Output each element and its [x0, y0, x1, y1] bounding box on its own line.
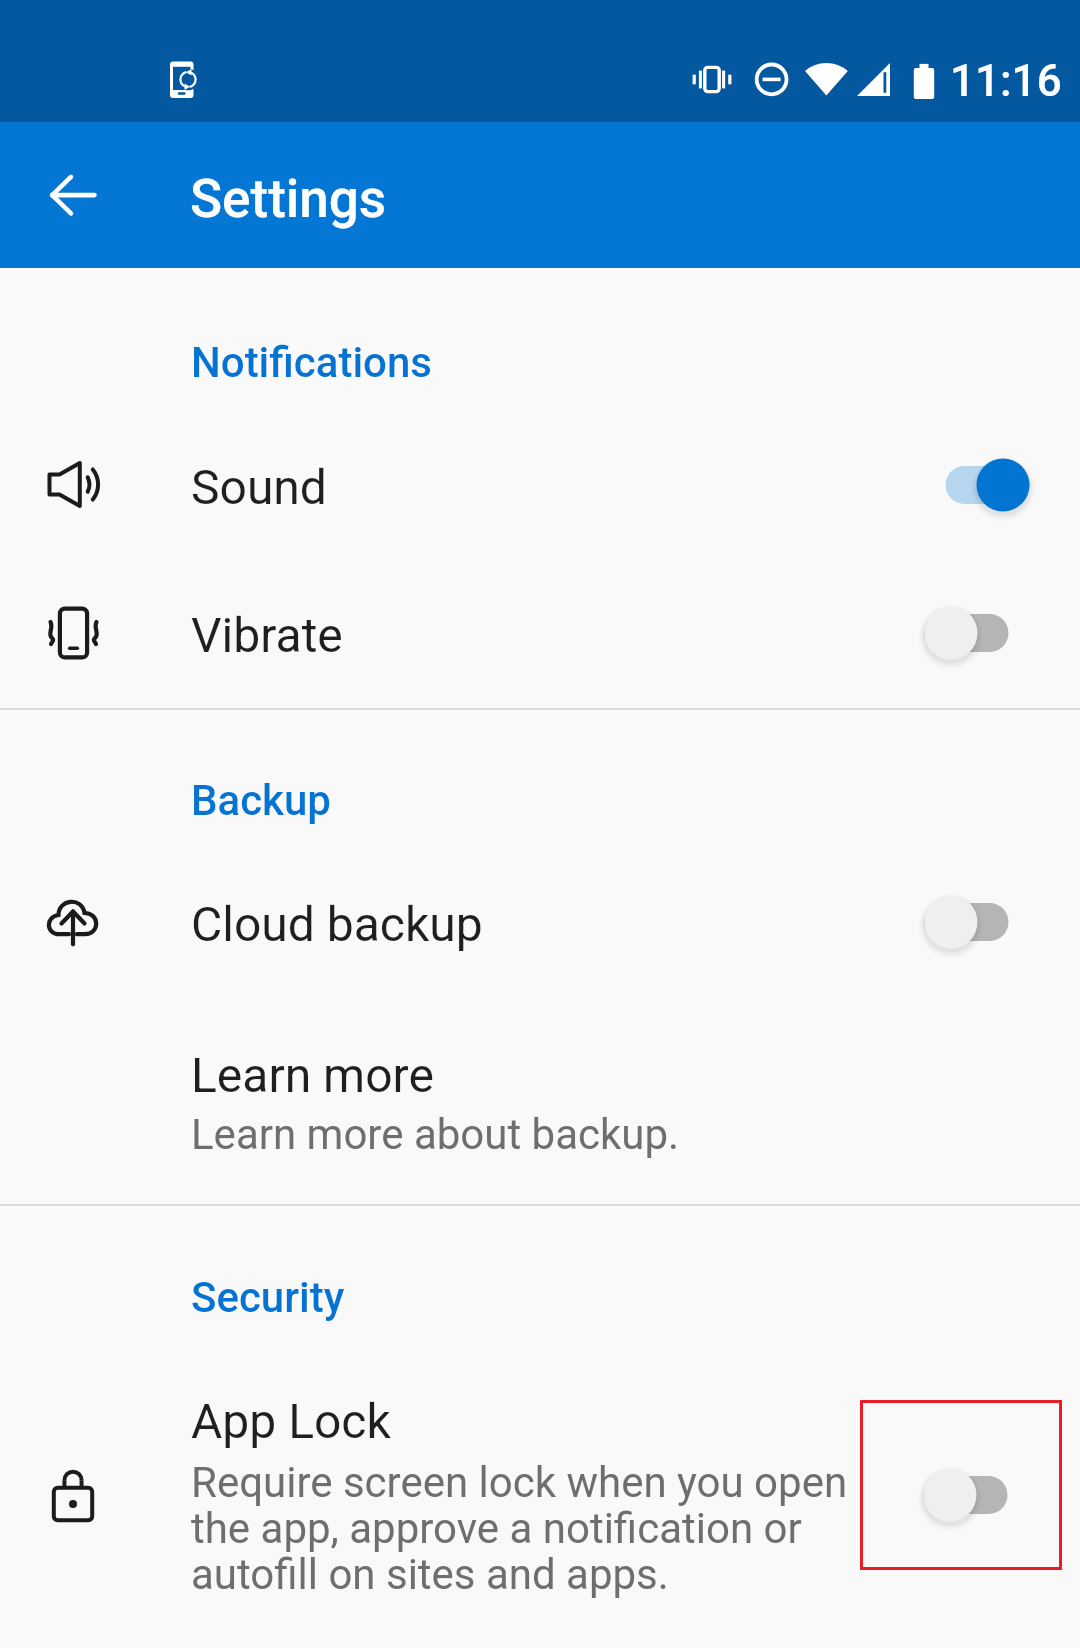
staticText: Learn more: [191, 1047, 434, 1103]
staticText: Settings: [190, 168, 387, 230]
staticText: 11:16: [950, 55, 1062, 107]
button[interactable]: App Lock: [0, 1380, 1080, 1620]
staticText: Require screen lock when you open: [191, 1458, 848, 1507]
staticText: Notifications: [191, 338, 432, 387]
button[interactable]: App Lock, off: [860, 1400, 1062, 1570]
staticText: Sound: [191, 459, 327, 515]
button[interactable]: Cloud backup, off: [920, 880, 1032, 964]
button[interactable]: Cloud backup: [0, 866, 1080, 1014]
staticText: Learn more about backup.: [191, 1110, 680, 1159]
staticText: App Lock: [191, 1393, 391, 1449]
button[interactable]: Back: [25, 147, 121, 243]
staticText: Cloud backup: [191, 896, 483, 952]
button[interactable]: Sound: [0, 430, 1080, 578]
button[interactable]: Vibrate: [0, 578, 1080, 726]
staticText: Security: [191, 1273, 345, 1322]
button[interactable]: Sound, on: [920, 443, 1032, 527]
staticText: Backup: [191, 776, 331, 825]
button[interactable]: Learn more: [0, 1020, 1080, 1190]
button[interactable]: Vibrate, off: [920, 591, 1032, 675]
staticText: the app, approve a notification or: [191, 1504, 802, 1553]
staticText: Vibrate: [191, 607, 343, 663]
staticText: autofill on sites and apps.: [191, 1550, 669, 1599]
